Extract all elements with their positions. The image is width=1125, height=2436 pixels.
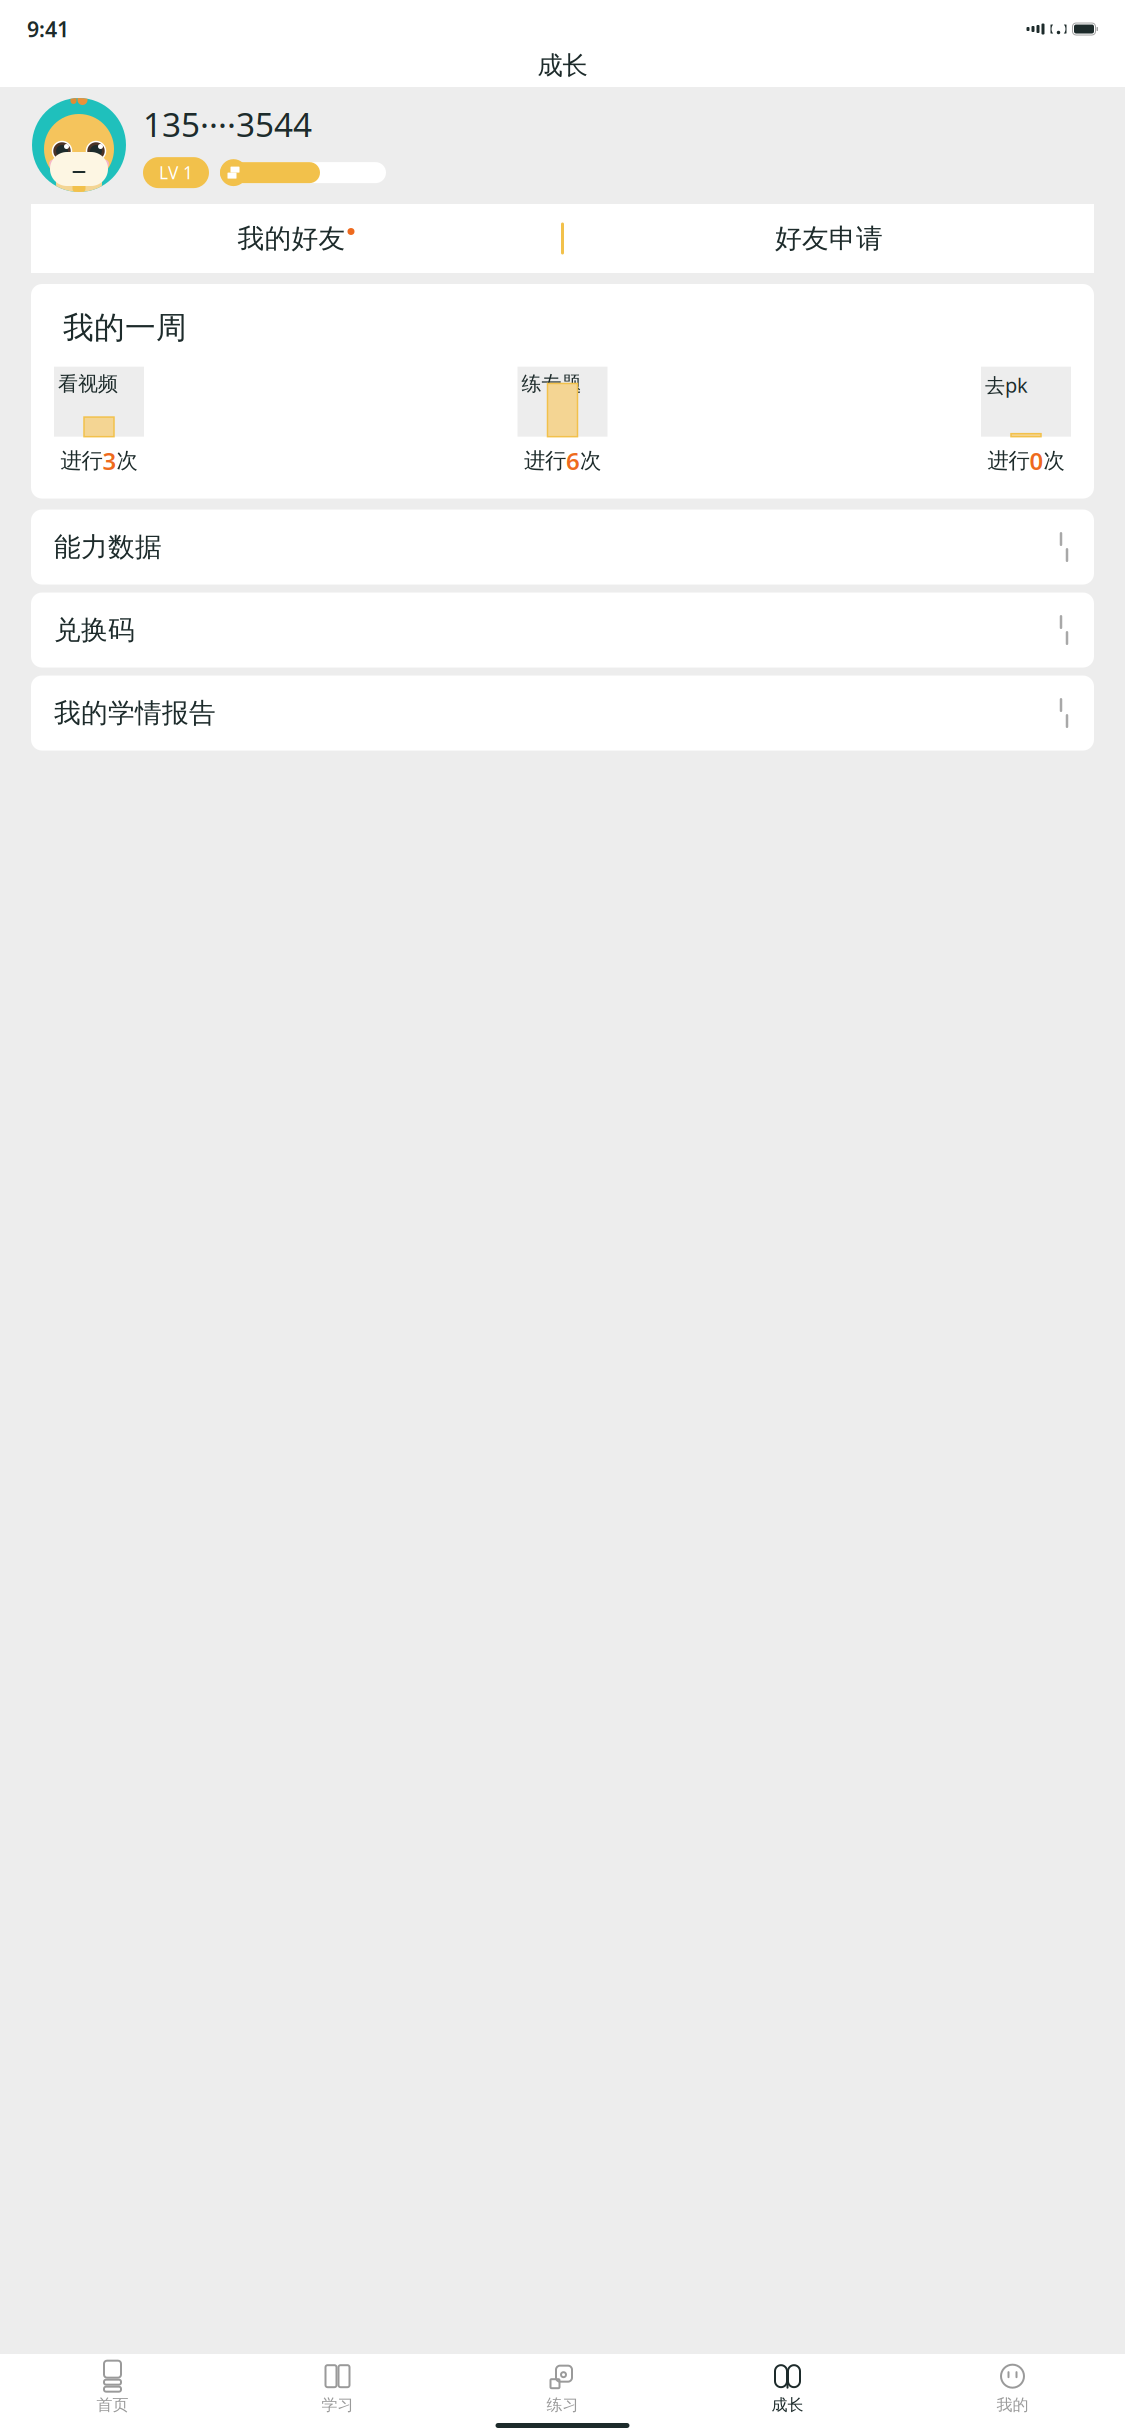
button[interactable]: 好友申请 [564,204,1094,273]
staticText: 兑换码 [54,614,135,646]
staticText: LV 1 [159,161,193,184]
staticText: 练习 [546,2395,578,2415]
button[interactable]: 首页 [0,2363,225,2413]
staticText: 首页 [96,2395,128,2415]
staticText: 看视频 [58,372,118,396]
staticText: 练专题 [521,372,581,396]
staticText: 能力数据 [54,531,162,563]
button[interactable]: 成长 [675,2363,900,2413]
staticText: 我的学情报告 [54,697,216,729]
button[interactable]: 学习 [225,2363,450,2413]
staticText: 次 [580,447,601,474]
button[interactable]: 我的好友 [31,204,561,273]
button[interactable]: 练习 [450,2363,675,2413]
staticText: 3 [102,445,116,477]
staticText: 成长 [771,2395,803,2415]
staticText: 进行 [60,447,102,474]
staticText: 我的好友 [237,222,345,255]
staticText: 学习 [321,2395,353,2415]
staticText: 135····3544 [143,102,312,146]
staticText: 次 [116,447,137,474]
staticText: 9:41 [27,15,69,43]
staticText: 我的一周 [63,309,187,347]
staticText: 进行 [524,447,566,474]
staticText: 6 [566,445,580,477]
staticText: 去pk [985,372,1028,398]
staticText: 我的 [996,2395,1028,2415]
staticText: 成长 [537,50,587,81]
button[interactable]: 我的 [900,2363,1125,2413]
button[interactable]: 能力数据 [31,509,1094,584]
staticText: 0 [1029,445,1043,477]
button[interactable]: 兑换码 [31,592,1094,667]
staticText: 次 [1043,447,1064,474]
button[interactable]: 我的学情报告 [31,675,1094,750]
staticText: 进行 [987,447,1029,474]
staticText: 好友申请 [775,222,883,255]
